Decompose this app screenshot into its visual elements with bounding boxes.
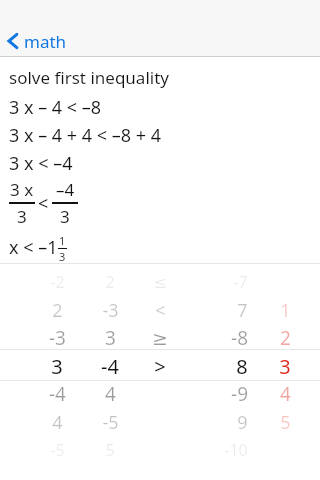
staticText: 9 [237, 410, 248, 435]
button[interactable]: Back to math [7, 29, 67, 53]
staticText: ≥ [152, 327, 168, 349]
staticText: 3 x < –4 [9, 151, 73, 176]
staticText: 3 [279, 353, 291, 380]
staticText: 3 [105, 325, 116, 351]
staticText: 1 [280, 298, 291, 323]
staticText: 2 [280, 325, 291, 351]
staticText: 5 [280, 410, 291, 435]
staticText: < [38, 191, 49, 216]
staticText: 2 [52, 298, 63, 323]
staticText: 3 x – 4 < –8 [9, 95, 102, 120]
staticText: 3 [17, 205, 27, 228]
staticText: 1 [59, 233, 66, 248]
staticText: 3 [60, 205, 70, 228]
staticText: 3 [51, 353, 63, 380]
staticText: ≤ [153, 273, 167, 292]
staticText: -7 [233, 271, 248, 293]
staticText: -3 [102, 298, 119, 323]
staticText: -5 [50, 439, 65, 461]
staticText: < [155, 298, 166, 323]
staticText: 2 [105, 271, 115, 293]
staticText: -3 [49, 325, 66, 351]
staticText: solve first inequality [9, 66, 169, 89]
staticText: 4 [105, 381, 116, 407]
staticText: 3 x – 4 + 4 < –8 + 4 [9, 123, 162, 148]
staticText: 8 [236, 353, 248, 380]
button[interactable]: Value picker [0, 263, 320, 480]
staticText: 4 [280, 381, 291, 407]
staticText: 4 [52, 410, 63, 435]
staticText: 3 [59, 249, 66, 264]
staticText: math [24, 30, 67, 53]
staticText: 3 x [10, 178, 34, 201]
staticText: 5 [105, 439, 115, 461]
staticText: -5 [102, 410, 119, 435]
staticText: -8 [231, 325, 248, 351]
staticText: -2 [50, 271, 65, 293]
staticText: 7 [237, 298, 248, 323]
staticText: -10 [224, 439, 248, 461]
staticText: > [154, 353, 166, 380]
staticText: -4 [101, 353, 119, 380]
staticText: -4 [49, 381, 66, 407]
staticText: -9 [231, 381, 248, 407]
staticText: x < –1 [9, 235, 58, 260]
staticText: –4 [56, 178, 75, 201]
